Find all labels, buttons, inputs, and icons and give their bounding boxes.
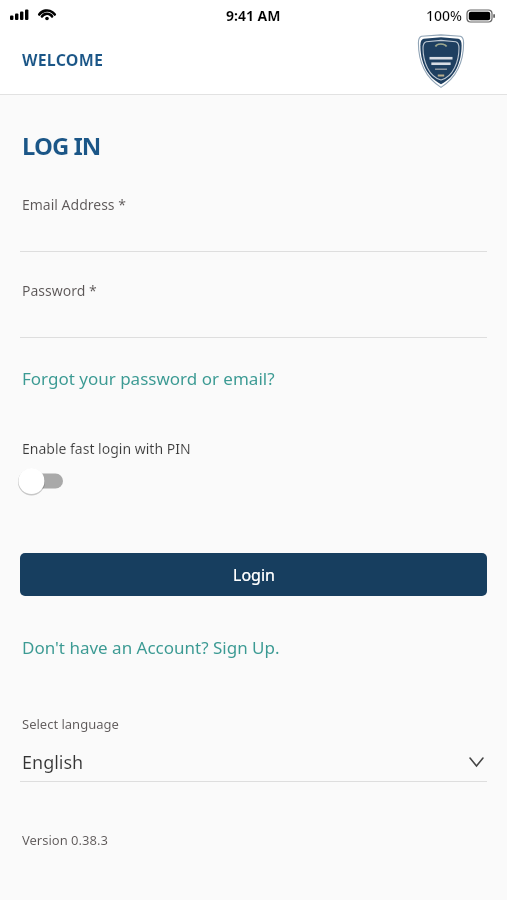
button[interactable]: Login bbox=[20, 553, 487, 596]
staticText: English bbox=[22, 750, 84, 775]
button[interactable]: Email Address * bbox=[20, 191, 487, 252]
button[interactable]: Forgot your password or email? bbox=[22, 367, 275, 390]
staticText: Enable fast login with PIN bbox=[22, 439, 191, 458]
button[interactable]: Password * bbox=[20, 277, 487, 338]
staticText: Login bbox=[233, 564, 275, 586]
staticText: Password * bbox=[22, 281, 97, 300]
button[interactable] bbox=[18, 467, 68, 495]
staticText: Version 0.38.3 bbox=[22, 831, 108, 849]
staticText: 9:41 AM bbox=[226, 6, 281, 25]
staticText: Email Address * bbox=[22, 195, 126, 214]
staticText: LOG IN bbox=[22, 129, 101, 162]
button[interactable]: English bbox=[20, 743, 487, 781]
button[interactable]: Don't have an Account? Sign Up. bbox=[22, 636, 280, 659]
staticText: Select language bbox=[22, 715, 119, 733]
staticText: 100% bbox=[426, 6, 462, 25]
staticText: WELCOME bbox=[22, 49, 104, 71]
